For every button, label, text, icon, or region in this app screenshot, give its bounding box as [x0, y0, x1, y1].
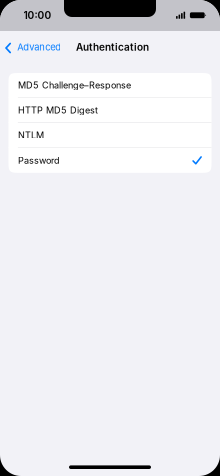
staticText: MD5 Challenge–Response: [18, 80, 131, 91]
button[interactable]: HTTP MD5 Digest: [8, 98, 211, 123]
staticText: Advanced: [17, 41, 61, 53]
staticText: Authentication: [76, 41, 149, 53]
button[interactable]: NTLM: [8, 123, 211, 148]
button[interactable]: Advanced: [0, 31, 67, 63]
staticText: HTTP MD5 Digest: [18, 105, 98, 116]
staticText: NTLM: [18, 130, 44, 141]
button[interactable]: MD5 Challenge–Response: [8, 73, 211, 98]
staticText: Password: [18, 155, 60, 166]
staticText: 10:00: [23, 9, 51, 21]
button[interactable]: Password: [8, 148, 211, 173]
